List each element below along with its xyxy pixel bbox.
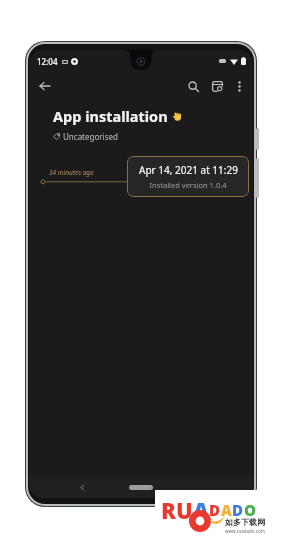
staticText: A	[221, 500, 232, 520]
button[interactable]: Back	[34, 75, 56, 97]
button[interactable]: Search	[182, 75, 204, 97]
staticText: 12:04	[37, 56, 58, 67]
button[interactable]: Home	[129, 485, 153, 490]
staticText: Installed version 1.0.4	[149, 180, 227, 190]
staticText: D	[232, 500, 244, 520]
staticText: Apr 14, 2021 at 11:29	[139, 163, 238, 177]
staticText: 如多下载网	[225, 517, 265, 527]
button[interactable]: More options	[229, 76, 249, 96]
staticText: Uncategorised	[63, 131, 118, 142]
staticText: D	[209, 500, 221, 520]
staticText: App installation	[53, 106, 168, 126]
staticText: R	[161, 495, 176, 525]
button[interactable]: Back	[73, 478, 91, 496]
button[interactable]: Apr 14, 2021 at 11:29	[127, 156, 249, 197]
staticText: O	[244, 500, 256, 520]
button[interactable]: Search by date	[206, 75, 228, 97]
staticText: www.ruadado.com	[225, 528, 265, 534]
staticText: 34 minutes ago	[49, 168, 94, 177]
staticText: A	[193, 495, 209, 525]
staticText: U	[176, 495, 193, 525]
